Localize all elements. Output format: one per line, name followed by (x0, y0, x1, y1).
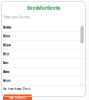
button[interactable]: Belize (1, 50, 85, 59)
staticText: Barbados (3, 25, 11, 30)
staticText: Belgium (3, 43, 11, 47)
staticText: Select your Country (3, 14, 30, 20)
staticText: GeeksforGeeks (27, 3, 60, 12)
button[interactable]: Belarus (1, 32, 85, 41)
staticText: Belize (3, 52, 9, 56)
button[interactable]: Bhutan (1, 68, 85, 77)
staticText: Benin (3, 61, 8, 65)
staticText: Bolivia (3, 78, 10, 83)
staticText: Bhutan (3, 70, 9, 74)
button[interactable]: Barbados (1, 23, 85, 32)
button[interactable]: Belgium (1, 41, 85, 50)
button[interactable]: Benin (1, 59, 85, 68)
button[interactable]: Clear Selection (3, 94, 32, 100)
staticText: Clear Selection (8, 95, 26, 100)
button[interactable]: Bolivia (1, 77, 85, 85)
staticText: Belarus (3, 34, 10, 39)
staticText: You have chosen Benin (3, 86, 31, 91)
